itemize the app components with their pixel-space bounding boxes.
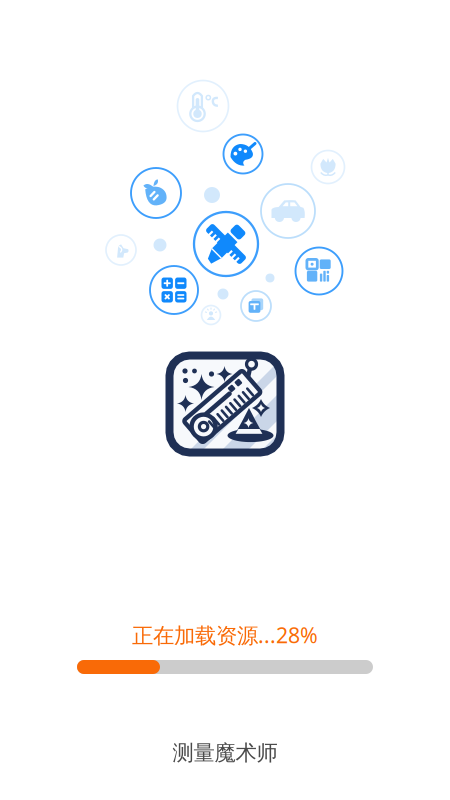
staticText: 测量魔术师 xyxy=(172,740,277,766)
staticText: 正在加载资源...28% xyxy=(132,621,318,649)
